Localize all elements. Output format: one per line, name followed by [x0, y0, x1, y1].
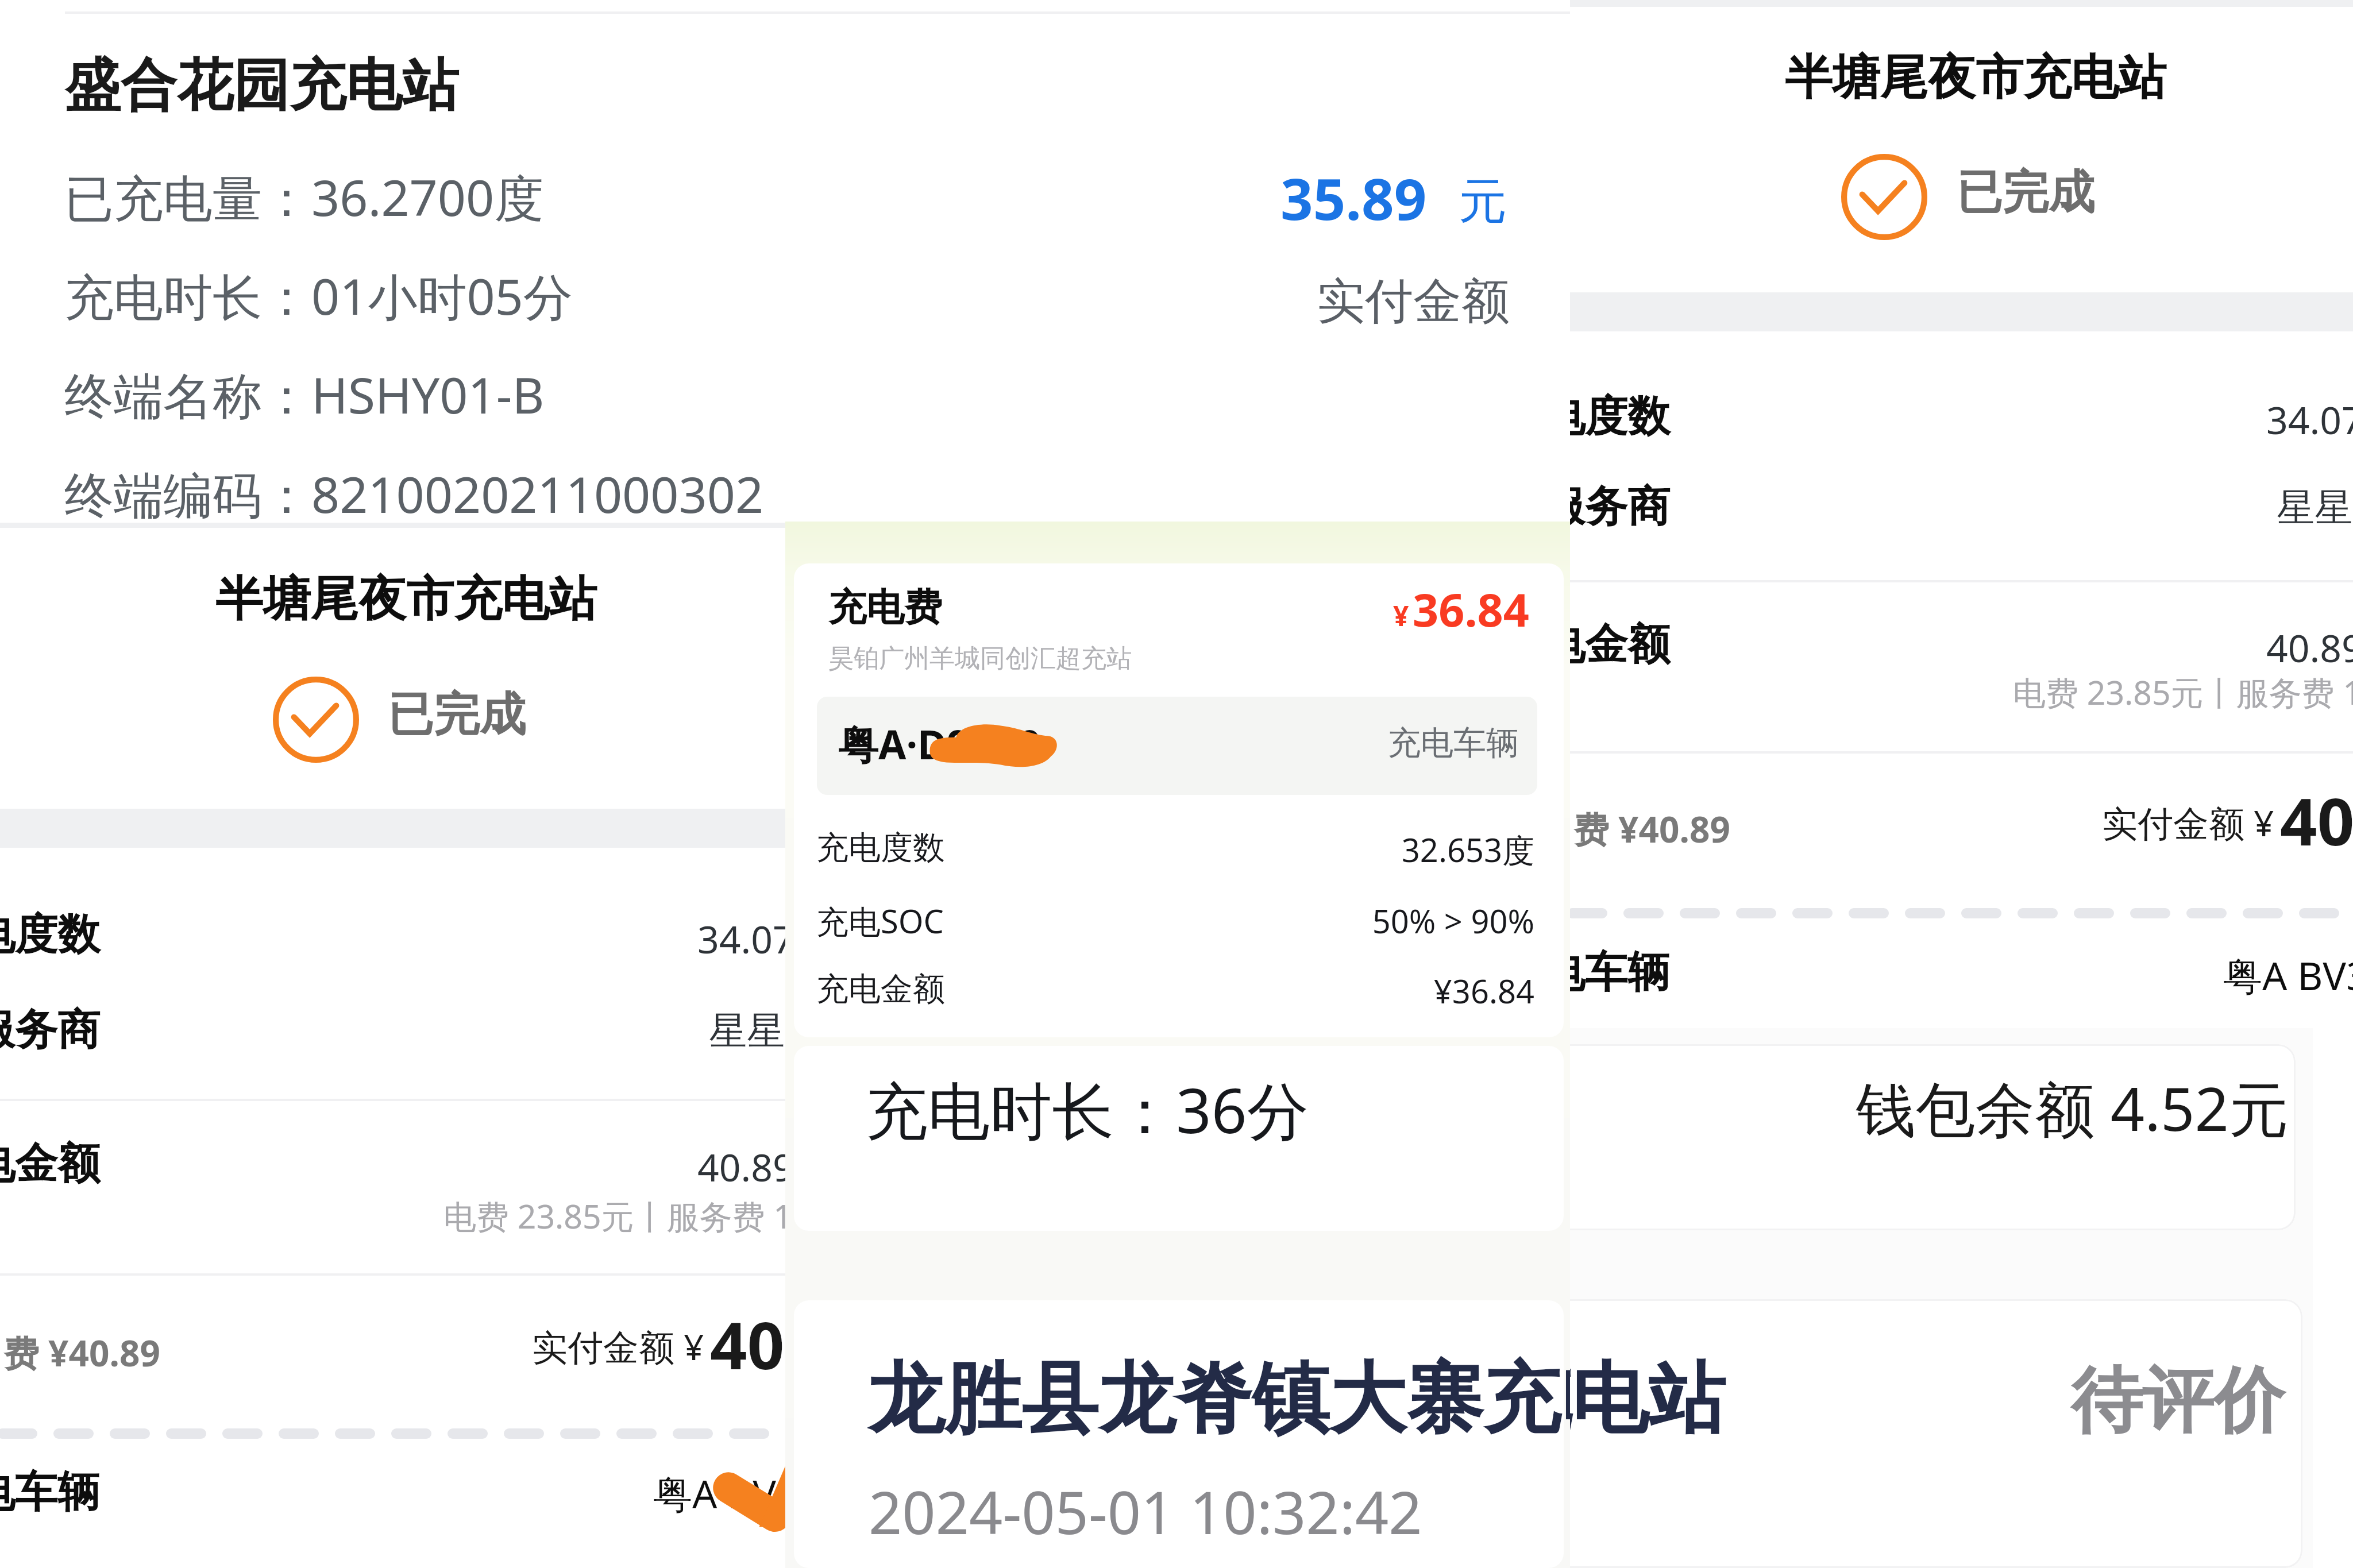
staticText: 服务商 — [1570, 480, 1670, 534]
staticText: 服务商 — [0, 1003, 100, 1057]
staticText: 实付金额 ¥ — [532, 1322, 704, 1371]
staticText: 2024-05-01 10:32:42 — [869, 1472, 1422, 1551]
staticText: 粤A BV3 — [2223, 948, 2353, 1002]
staticText: 待评价 — [2071, 1357, 2285, 1446]
staticText: 充电度数 — [816, 828, 945, 868]
staticText: 盛合花园充电站 — [64, 51, 458, 121]
staticText: 充电时长：36分 — [866, 1067, 1309, 1152]
staticText: 昊铂广州羊城同创汇超充站 — [828, 643, 1132, 674]
staticText: 实付金额 ¥ — [2102, 798, 2274, 847]
staticText: ¥ — [1393, 597, 1409, 634]
staticText: 34.0700度 — [2266, 393, 2353, 445]
button[interactable]: 半塘尾夜市充电站 — [1570, 0, 2353, 1568]
staticText: 40.89元 — [2266, 621, 2353, 673]
button[interactable]: 盛合花园充电站 — [0, 0, 785, 1568]
staticText: 32.653度 — [1401, 828, 1534, 871]
staticText: 40.89 — [710, 1300, 785, 1388]
staticText: 电车辆 — [1570, 946, 1670, 999]
staticText: 费 ¥40.89 — [1573, 805, 1730, 853]
staticText: 充电金额 — [816, 969, 945, 1010]
staticText: 终端编码：8210020211000302 — [64, 460, 764, 527]
staticText: 已完成 — [1957, 164, 2094, 222]
staticText: 电度数 — [0, 908, 100, 961]
staticText: 电费 23.85元丨服务费 17.04元 — [443, 1194, 785, 1238]
staticText: 电度数 — [1570, 390, 1670, 443]
other: 已完成 — [1841, 154, 1927, 240]
staticText: 实付金额 — [1317, 271, 1510, 332]
staticText: 34.0700度 — [697, 913, 785, 964]
staticText: 已完成 — [388, 686, 526, 744]
staticText: 36.84 — [1413, 578, 1529, 640]
staticText: 电车辆 — [0, 1466, 100, 1519]
staticText: 40.89元 — [697, 1141, 785, 1192]
staticText: 充电车辆 — [1388, 723, 1519, 764]
staticText: 已充电量：36.2700度 — [64, 163, 544, 230]
staticText: 元 — [1459, 171, 1507, 232]
staticText: 充电费 — [828, 584, 942, 631]
staticText: 50% > 90% — [1372, 899, 1534, 943]
staticText: 半塘尾夜市充电站 — [215, 569, 597, 629]
staticText: 粤A·D9Y30 — [838, 716, 1042, 771]
staticText: 40.89 — [2280, 776, 2353, 864]
other: 已完成 — [273, 677, 359, 763]
staticText: 电金额 — [0, 1137, 100, 1191]
staticText: 充电站 — [1570, 1351, 1725, 1448]
staticText: 电费 23.85元丨服务费 17.04元 — [2013, 670, 2353, 715]
staticText: 充电SOC — [816, 899, 944, 943]
button[interactable]: 35.89 — [785, 0, 1570, 1568]
staticText: 粤A BV3 — [653, 1466, 785, 1520]
staticText: 电金额 — [1570, 618, 1670, 671]
staticText: 费 ¥40.89 — [3, 1328, 160, 1377]
staticText: 终端名称：HSHY01-B — [64, 361, 545, 428]
staticText: 星星充电 — [709, 1007, 785, 1055]
staticText: 半塘尾夜市充电站 — [1785, 48, 2166, 108]
staticText: 星星充电 — [2277, 484, 2353, 531]
staticText: 充电时长：01小时05分 — [64, 262, 573, 329]
staticText: 龙胜县龙脊镇大寨充电站 — [867, 1351, 1570, 1448]
staticText: 35.89 — [1280, 159, 1427, 237]
staticText: 钱包余额 4.52元 — [1856, 1067, 2289, 1149]
staticText: ¥36.84 — [1433, 969, 1534, 1013]
